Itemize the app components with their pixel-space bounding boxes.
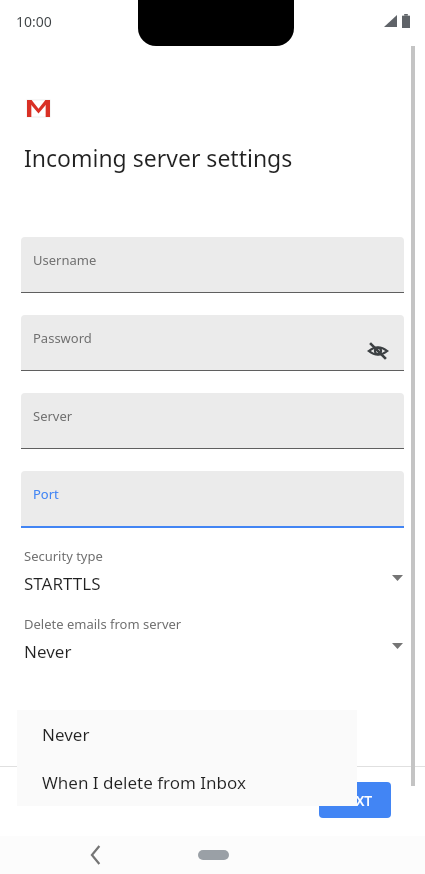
staticText: NEXT xyxy=(337,791,373,810)
staticText: Never xyxy=(42,723,90,746)
button[interactable]: Username xyxy=(21,237,404,293)
staticText: Username xyxy=(33,251,97,269)
button[interactable]: Back xyxy=(78,837,114,873)
staticText: Security type xyxy=(24,547,103,565)
button[interactable]: Password xyxy=(21,315,404,371)
staticText: Never xyxy=(24,640,72,663)
staticText: When I delete from Inbox xyxy=(42,771,246,794)
staticText: STARTTLS xyxy=(24,572,101,595)
button[interactable]: Server xyxy=(21,393,404,449)
button[interactable]: Port xyxy=(21,471,404,528)
staticText: Server xyxy=(33,407,73,425)
staticText: Port xyxy=(33,485,59,503)
staticText: Incoming server settings xyxy=(24,142,293,173)
button[interactable]: When I delete from Inbox xyxy=(17,758,357,806)
button[interactable]: Home xyxy=(198,850,229,860)
button[interactable]: NEXT xyxy=(319,782,391,818)
staticText: 10:00 xyxy=(16,12,52,31)
button[interactable]: Show password xyxy=(364,337,392,365)
button[interactable]: Never xyxy=(17,710,357,758)
button[interactable]: Security type xyxy=(0,547,425,599)
button[interactable]: Delete emails from server xyxy=(0,615,425,667)
staticText: Delete emails from server xyxy=(24,615,182,633)
staticText: Password xyxy=(33,329,92,347)
